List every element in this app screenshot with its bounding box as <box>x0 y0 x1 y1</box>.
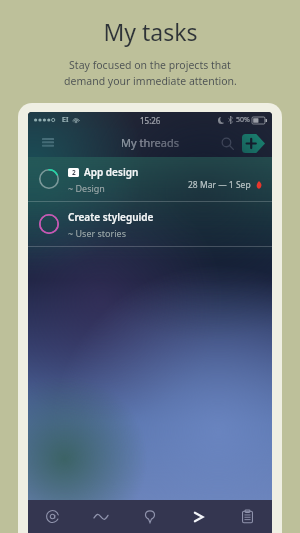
button[interactable]: Create styleguide <box>28 202 272 246</box>
button[interactable]: Tasks <box>223 500 272 533</box>
button[interactable]: Mentions <box>28 500 76 533</box>
staticText: My tasks <box>103 16 198 47</box>
button[interactable]: Menu <box>37 132 59 154</box>
button[interactable]: Search <box>216 132 238 154</box>
button[interactable]: Add thread <box>242 134 265 153</box>
button[interactable]: Threads <box>174 500 223 533</box>
button[interactable]: Activity <box>76 500 125 533</box>
staticText: demand your immediate attention. <box>64 74 237 88</box>
button[interactable]: Chat <box>125 500 174 533</box>
staticText: My threads <box>121 135 179 150</box>
staticText: Create styleguide <box>68 210 154 224</box>
staticText: 15:26 <box>140 115 161 126</box>
staticText: Stay focused on the projects that <box>69 58 231 72</box>
staticText: ~ User stories <box>68 227 126 239</box>
staticText: EI <box>62 115 69 125</box>
staticText: 28 Mar — 1 Sep <box>188 179 251 191</box>
button[interactable]: 2 <box>28 157 272 201</box>
staticText: 2 <box>72 168 76 177</box>
staticText: 50% <box>236 115 250 125</box>
staticText: ~ Design <box>68 182 105 194</box>
staticText: App design <box>84 165 139 179</box>
